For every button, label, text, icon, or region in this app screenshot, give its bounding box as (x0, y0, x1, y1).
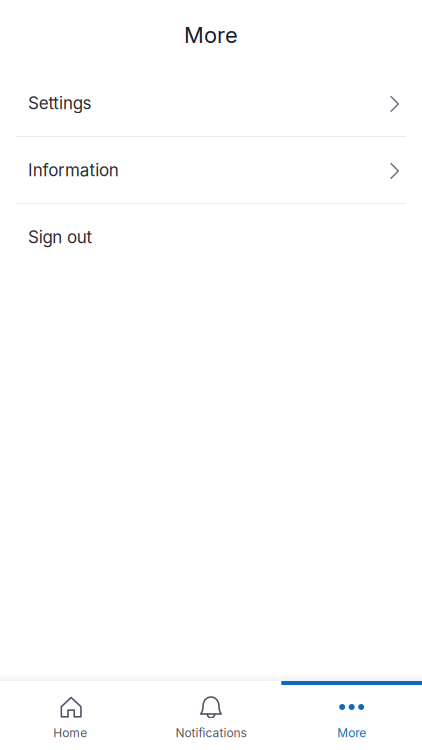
button[interactable]: Sign out (0, 204, 422, 270)
staticText: More (337, 726, 366, 740)
staticText: More (184, 22, 238, 48)
staticText: Sign out (28, 227, 92, 247)
staticText: Settings (28, 93, 91, 113)
button[interactable]: Information (0, 137, 422, 204)
button[interactable]: Notifications (141, 681, 281, 750)
button[interactable]: More (281, 681, 422, 750)
button[interactable]: Settings (0, 70, 422, 137)
button[interactable]: Home (0, 681, 141, 750)
staticText: Notifications (175, 726, 246, 740)
staticText: Home (53, 726, 87, 740)
staticText: Information (28, 160, 119, 180)
